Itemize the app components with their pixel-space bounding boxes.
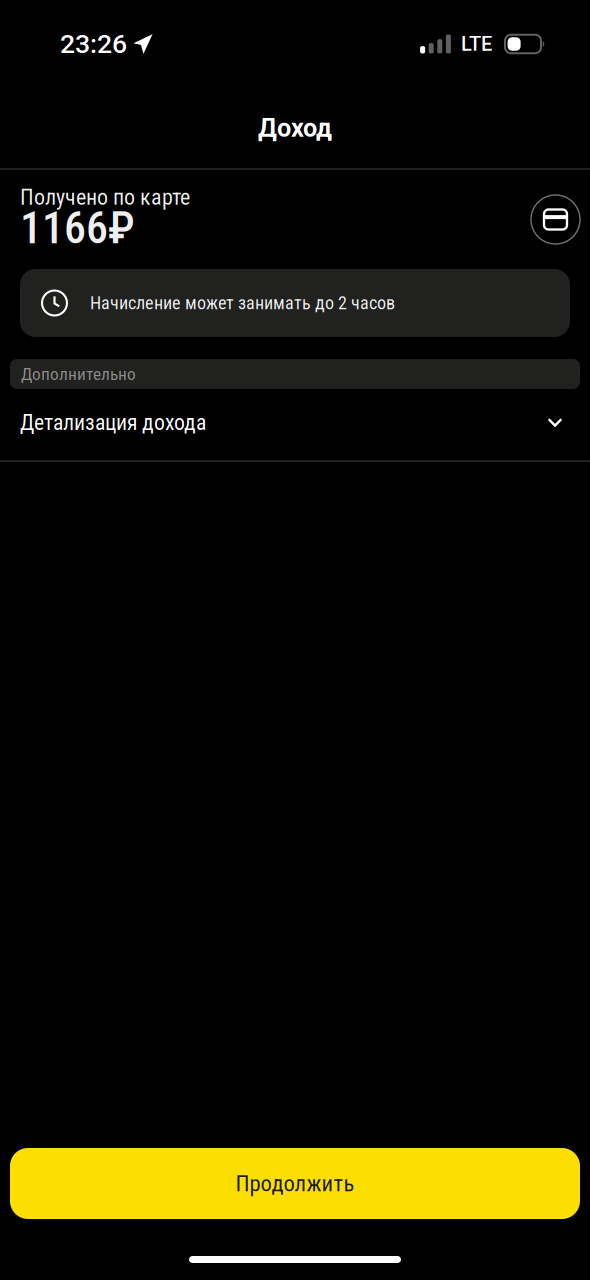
button[interactable]: Карта: [531, 195, 580, 244]
staticText: Начисление может занимать до 2 часов: [90, 292, 395, 314]
button[interactable]: Продолжить: [10, 1148, 580, 1219]
staticText: Получено по карте: [20, 184, 190, 210]
staticText: Детализация дохода: [20, 410, 206, 435]
staticText: LTE: [461, 32, 492, 56]
staticText: 1166₽: [20, 202, 135, 254]
staticText: 23:26: [60, 28, 127, 60]
staticText: Продолжить: [235, 1170, 354, 1197]
button[interactable]: Детализация дохода: [0, 389, 590, 460]
staticText: Дополнительно: [21, 364, 136, 384]
staticText: Доход: [258, 113, 332, 143]
